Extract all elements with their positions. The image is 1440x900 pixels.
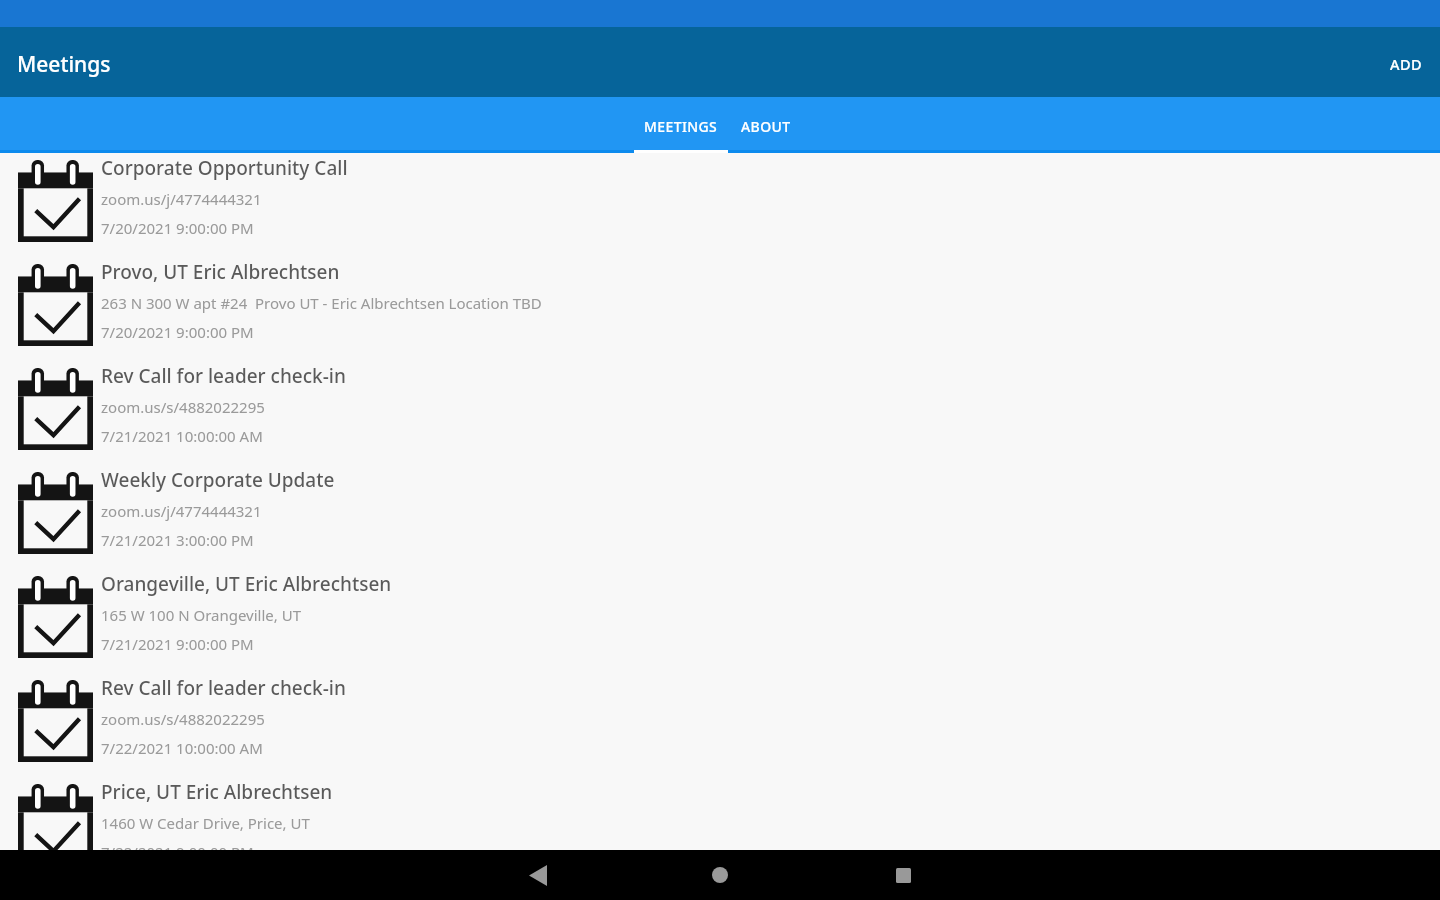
button[interactable]: Weekly Corporate Update	[0, 465, 1440, 569]
staticText: Rev Call for leader check-in	[101, 363, 346, 389]
staticText: 7/21/2021 10:00:00 AM	[101, 426, 263, 446]
button[interactable]: Price, UT Eric Albrechtsen	[0, 777, 1440, 850]
staticText: zoom.us/j/4774444321	[101, 501, 262, 521]
staticText: Price, UT Eric Albrechtsen	[101, 779, 333, 805]
button[interactable]: Orangeville, UT Eric Albrechtsen	[0, 569, 1440, 673]
staticText: Orangeville, UT Eric Albrechtsen	[101, 571, 392, 597]
staticText: zoom.us/j/4774444321	[101, 189, 262, 209]
button[interactable]: ADD	[1369, 27, 1440, 97]
staticText: Meetings	[17, 50, 111, 79]
staticText: 7/20/2021 9:00:00 PM	[101, 322, 254, 342]
staticText: Weekly Corporate Update	[101, 467, 335, 493]
button[interactable]: Back	[510, 850, 566, 900]
staticText: ABOUT	[741, 117, 791, 136]
staticText: 165 W 100 N Orangeville, UT	[101, 605, 302, 625]
button[interactable]: Rev Call for leader check-in	[0, 673, 1440, 777]
staticText: MEETINGS	[644, 117, 718, 136]
button[interactable]: Rev Call for leader check-in	[0, 361, 1440, 465]
button[interactable]: Provo, UT Eric Albrechtsen	[0, 257, 1440, 361]
button[interactable]: Home	[692, 850, 748, 900]
staticText: 7/21/2021 3:00:00 PM	[101, 530, 254, 550]
staticText: zoom.us/s/4882022295	[101, 397, 265, 417]
staticText: zoom.us/s/4882022295	[101, 709, 265, 729]
staticText: Rev Call for leader check-in	[101, 675, 346, 701]
staticText: 7/22/2021 10:00:00 AM	[101, 738, 263, 758]
staticText: 263 N 300 W apt #24 Provo UT - Eric Albr…	[101, 293, 542, 313]
staticText: 7/20/2021 9:00:00 PM	[101, 218, 254, 238]
button[interactable]: Recent apps	[875, 850, 931, 900]
button[interactable]: Corporate Opportunity Call	[0, 153, 1440, 257]
staticText: Provo, UT Eric Albrechtsen	[101, 259, 340, 285]
staticText: ADD	[1390, 54, 1423, 74]
staticText: 1460 W Cedar Drive, Price, UT	[101, 813, 310, 833]
button[interactable]: MEETINGS	[634, 97, 728, 153]
button[interactable]: ABOUT	[728, 97, 803, 153]
staticText: 7/21/2021 9:00:00 PM	[101, 634, 254, 654]
staticText: 7/22/2021 9:00:00 PM	[101, 842, 254, 850]
staticText: Corporate Opportunity Call	[101, 155, 348, 181]
